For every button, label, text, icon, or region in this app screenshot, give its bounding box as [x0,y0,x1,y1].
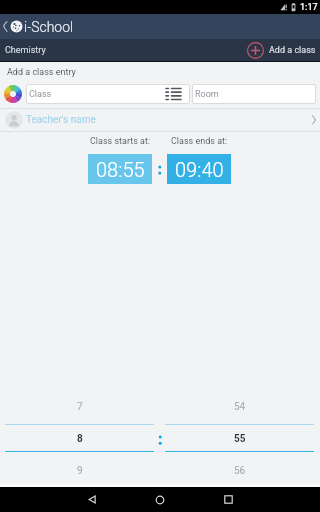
button[interactable]: Back [0,14,10,39]
staticText: 08:55 [96,158,145,181]
staticText: Class ends at: [171,136,228,147]
button[interactable]: Add a class [247,42,320,59]
button[interactable]: Room [192,84,316,104]
staticText: Teacher's name [26,114,96,126]
staticText: 8 [77,433,83,445]
staticText: 09:40 [175,158,224,181]
staticText: Add a class [269,45,316,56]
button[interactable]: Back [58,487,126,512]
button[interactable]: 7 [0,389,160,484]
staticText: Class starts at: [90,136,151,147]
button[interactable]: Teacher's name [0,108,320,132]
staticText: i-School [24,19,74,35]
staticText: Room [195,89,219,100]
button[interactable]: 09:40 [167,154,231,184]
staticText: Class [29,89,52,100]
staticText: 56 [234,465,246,477]
staticText: 9 [77,465,83,477]
staticText: 1:17 [300,2,318,13]
button[interactable]: 08:55 [88,154,152,184]
staticText: Add a class entry [7,67,76,78]
staticText: Chemistry [5,45,46,56]
button[interactable]: 54 [160,389,320,484]
staticText: 7 [77,401,83,413]
staticText: 55 [234,433,246,445]
button[interactable]: Recent apps [194,487,262,512]
button[interactable]: Class [26,84,190,104]
button[interactable]: Home [126,487,194,512]
staticText: 54 [234,401,246,413]
button[interactable]: Pick colour [4,85,22,103]
